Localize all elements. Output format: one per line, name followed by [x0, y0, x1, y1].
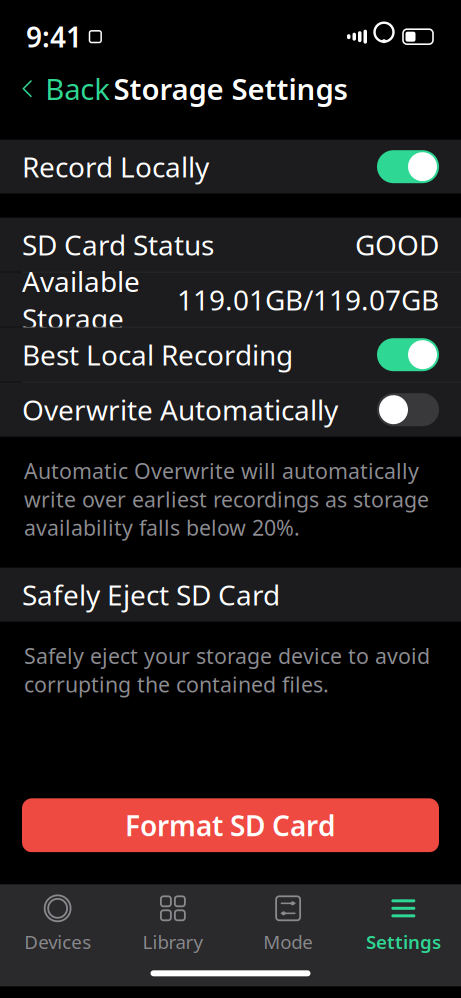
staticText: Back — [45, 69, 110, 108]
button[interactable]: Format SD Card — [22, 798, 439, 852]
staticText: 119.01GB/119.07GB — [177, 281, 439, 318]
button[interactable]: SD Card Status — [0, 218, 461, 272]
button[interactable]: Available Storage — [0, 273, 461, 327]
staticText: Storage Settings — [113, 69, 347, 108]
staticText: Automatic Overwrite will automatically w… — [24, 457, 429, 542]
staticText: Library — [142, 929, 203, 954]
staticText: SD Card Status — [22, 226, 214, 263]
button[interactable]: Best Local Recording — [0, 328, 461, 382]
staticText: 9:41 — [26, 18, 82, 55]
button[interactable]: Back — [0, 67, 124, 111]
staticText: Settings — [366, 929, 441, 954]
button[interactable]: Safely Eject SD Card — [0, 568, 461, 622]
staticText: GOOD — [355, 226, 439, 263]
button[interactable]: Settings — [346, 884, 461, 960]
staticText: Available Storage — [22, 262, 140, 337]
staticText: Mode — [263, 929, 313, 954]
staticText: Best Local Recording — [22, 336, 293, 373]
button[interactable]: Devices — [0, 884, 115, 960]
staticText: Format SD Card — [125, 807, 336, 844]
button[interactable]: Mode — [230, 884, 346, 960]
staticText: Devices — [24, 929, 91, 954]
staticText: Safely eject your storage device to avoi… — [24, 642, 430, 698]
button[interactable]: Overwrite Automatically — [0, 383, 461, 437]
staticText: Safely Eject SD Card — [22, 576, 280, 613]
staticText: Overwrite Automatically — [22, 391, 338, 428]
button[interactable]: Record Locally — [0, 140, 461, 194]
staticText: Record Locally — [22, 148, 209, 185]
button[interactable]: Library — [115, 884, 230, 960]
